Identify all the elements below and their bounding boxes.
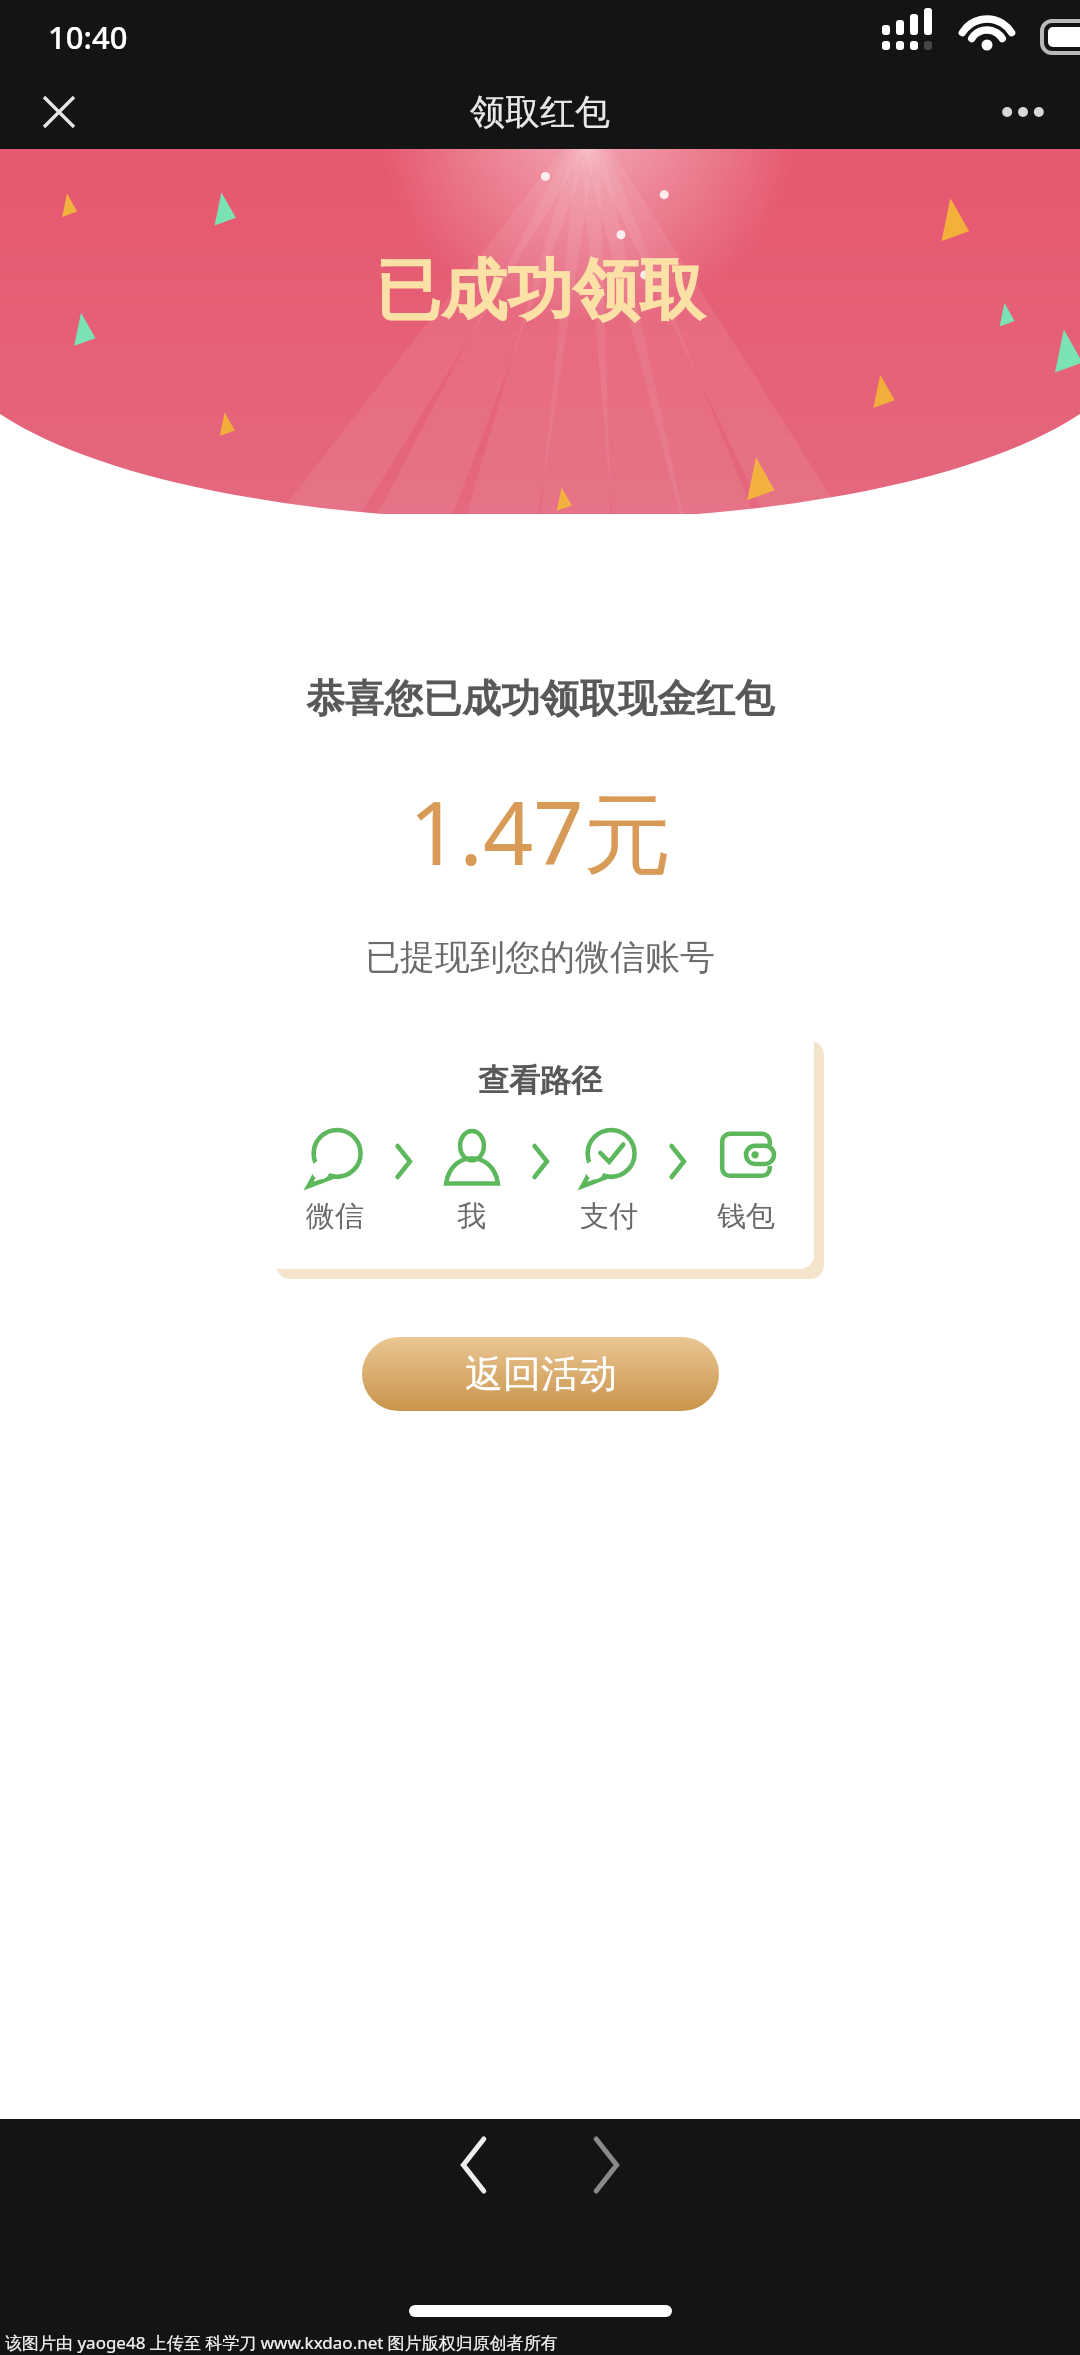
button[interactable]: 我 [421, 1124, 522, 1235]
button[interactable]: Close [26, 79, 92, 145]
staticText: 领取红包 [470, 90, 610, 134]
staticText: 已成功领取 [375, 249, 705, 332]
button[interactable]: Forward [574, 2133, 638, 2197]
staticText: 10:40 [48, 16, 128, 58]
staticText: 我 [457, 1198, 486, 1235]
button[interactable]: 查看路径 [266, 1031, 814, 1269]
staticText: 恭喜您已成功领取现金红包 [306, 674, 774, 723]
button[interactable]: 返回活动 [362, 1337, 719, 1411]
staticText: 1.47元 [409, 771, 672, 891]
button[interactable]: 钱包 [695, 1124, 796, 1235]
button[interactable]: Back [442, 2133, 506, 2197]
button[interactable]: 微信 [284, 1124, 385, 1235]
staticText: 微信 [306, 1198, 364, 1235]
staticText: 支付 [580, 1198, 638, 1235]
staticText: 钱包 [717, 1198, 775, 1235]
staticText: 已提现到您的微信账号 [365, 935, 715, 979]
button[interactable]: 支付 [558, 1124, 659, 1235]
staticText: 查看路径 [478, 1061, 602, 1100]
button[interactable]: More options [990, 79, 1056, 145]
staticText: 该图片由 yaoge48 上传至 科学刀 www.kxdao.net 图片版权归… [5, 2331, 558, 2354]
staticText: 返回活动 [465, 1350, 617, 1398]
